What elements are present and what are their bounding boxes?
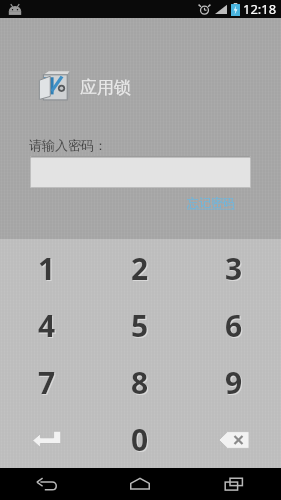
button[interactable]: 7 — [0, 354, 93, 411]
staticText: 8 — [131, 362, 149, 403]
staticText: 6 — [226, 306, 244, 347]
button[interactable]: 1 — [0, 239, 93, 297]
button[interactable]: 忘记密码 — [186, 194, 236, 211]
staticText: 1 — [39, 249, 57, 290]
staticText: 3 — [226, 249, 244, 290]
staticText: 忘记密码 — [187, 195, 235, 210]
staticText: 9 — [226, 363, 244, 404]
button[interactable]: 8 — [93, 354, 187, 411]
button[interactable]: 6 — [187, 297, 281, 354]
button[interactable]: 9 — [187, 354, 281, 411]
button[interactable]: Recent apps — [187, 468, 281, 500]
button[interactable]: 4 — [0, 297, 93, 354]
staticText: 7 — [38, 362, 56, 403]
staticText: 4 — [39, 306, 57, 347]
staticText: 4 — [38, 305, 56, 346]
staticText: 请输入密码： — [29, 137, 107, 153]
staticText: 3 — [225, 248, 243, 289]
button[interactable]: Backspace — [187, 411, 281, 468]
button[interactable]: 2 — [93, 239, 187, 297]
button[interactable] — [30, 156, 251, 188]
staticText: 8 — [132, 363, 150, 404]
staticText: 2 — [132, 249, 150, 290]
staticText: 0 — [132, 420, 150, 461]
button[interactable]: 3 — [187, 239, 281, 297]
staticText: 9 — [225, 362, 243, 403]
staticText: 7 — [39, 363, 57, 404]
button[interactable]: Back — [0, 468, 93, 500]
staticText: 应用锁 — [80, 77, 131, 98]
staticText: 0 — [131, 419, 149, 460]
button[interactable]: 5 — [93, 297, 187, 354]
staticText: 12:18 — [243, 0, 277, 18]
staticText: 6 — [225, 305, 243, 346]
staticText: 5 — [132, 306, 150, 347]
staticText: 2 — [131, 248, 149, 289]
staticText: 1 — [38, 248, 56, 289]
staticText: 5 — [131, 305, 149, 346]
button[interactable]: Home — [93, 468, 187, 500]
button[interactable]: 0 — [93, 411, 187, 468]
button[interactable]: Enter — [0, 411, 93, 468]
